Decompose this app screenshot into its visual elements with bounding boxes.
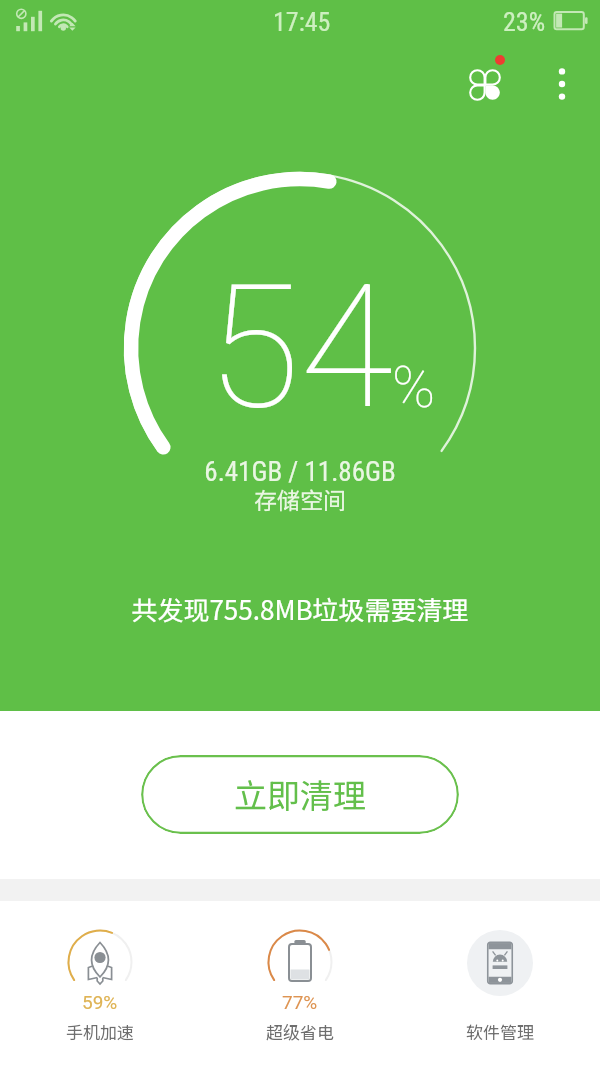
staticText: 77% [282,991,318,1013]
staticText: 软件管理 [466,1019,534,1044]
button[interactable]: 77% [200,901,400,1067]
staticText: 存储空间 [0,482,600,515]
staticText: % [392,353,436,421]
staticText: 54 [207,248,394,447]
staticText: 59% [82,991,118,1013]
button[interactable]: 59% [0,901,200,1067]
staticText: 23% [503,7,546,37]
staticText: 手机加速 [66,1019,134,1044]
staticText: 共发现755.8MB垃圾需要清理 [0,590,600,628]
staticText: 17:45 [273,7,331,37]
button[interactable]: Tools [455,55,515,115]
staticText: 超级省电 [266,1019,334,1044]
button[interactable]: More options [536,57,588,109]
button[interactable]: 立即清理 [141,755,459,834]
staticText: 6.41GB / 11.86GB [0,456,600,488]
staticText: 立即清理 [234,770,366,818]
button[interactable]: 软件管理 [400,901,600,1067]
